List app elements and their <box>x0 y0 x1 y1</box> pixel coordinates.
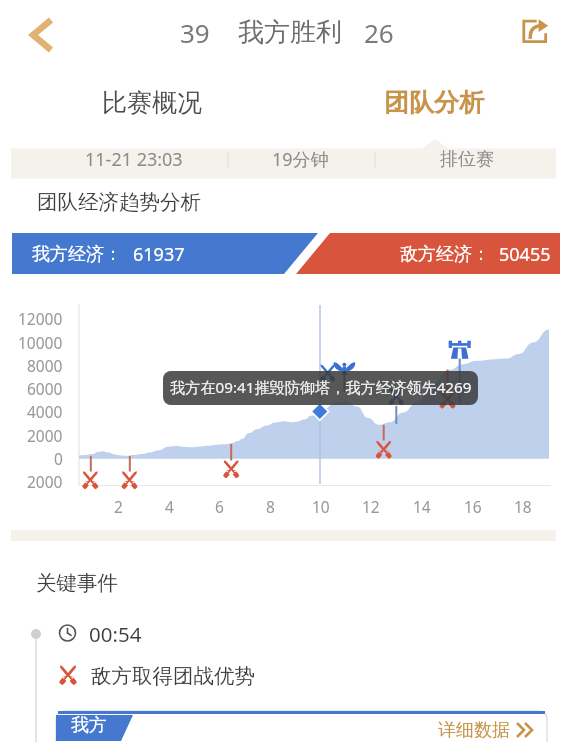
staticText: 18 <box>514 496 532 517</box>
staticText: 8000 <box>27 355 63 376</box>
staticText: 我方经济： <box>32 243 122 266</box>
staticText: 团队经济趋势分析 <box>37 189 201 215</box>
staticText: 关键事件 <box>36 570 118 596</box>
button[interactable]: Share <box>510 8 558 56</box>
staticText: 排位赛 <box>440 148 494 171</box>
staticText: 10 <box>312 496 330 517</box>
button[interactable] <box>80 78 235 124</box>
button[interactable] <box>56 711 547 742</box>
staticText: 0 <box>54 448 63 469</box>
button[interactable] <box>364 78 519 124</box>
staticText: 4000 <box>27 401 63 422</box>
button[interactable]: Back <box>18 12 64 58</box>
staticText: 我方 <box>71 714 107 737</box>
staticText: 6 <box>215 496 224 517</box>
staticText: 比赛概况 <box>102 87 202 118</box>
staticText: 4 <box>165 496 174 517</box>
staticText: 14 <box>413 496 431 517</box>
staticText: 50455 <box>499 242 551 267</box>
staticText: 39 <box>180 15 210 50</box>
staticText: 16 <box>464 496 482 517</box>
staticText: 敌方取得团战优势 <box>91 663 255 689</box>
staticText: 敌方经济： <box>400 243 490 266</box>
staticText: 19分钟 <box>272 147 329 172</box>
staticText: 00:54 <box>89 620 142 648</box>
staticText: 2000 <box>27 471 63 492</box>
staticText: 详细数据 <box>438 719 510 742</box>
staticText: 11-21 23:03 <box>85 147 183 172</box>
staticText: 12000 <box>18 308 63 329</box>
staticText: 6000 <box>27 378 63 399</box>
staticText: 26 <box>364 15 394 50</box>
staticText: 8 <box>266 496 275 517</box>
staticText: 2000 <box>27 425 63 446</box>
staticText: 2 <box>114 496 123 517</box>
staticText: 我方胜利 <box>238 16 342 49</box>
staticText: 团队分析 <box>384 87 484 118</box>
staticText: 61937 <box>133 242 185 267</box>
staticText: 10000 <box>18 332 63 353</box>
staticText: 我方在09:41摧毁防御塔，我方经济领先4269 <box>170 377 472 398</box>
staticText: 12 <box>362 496 380 517</box>
